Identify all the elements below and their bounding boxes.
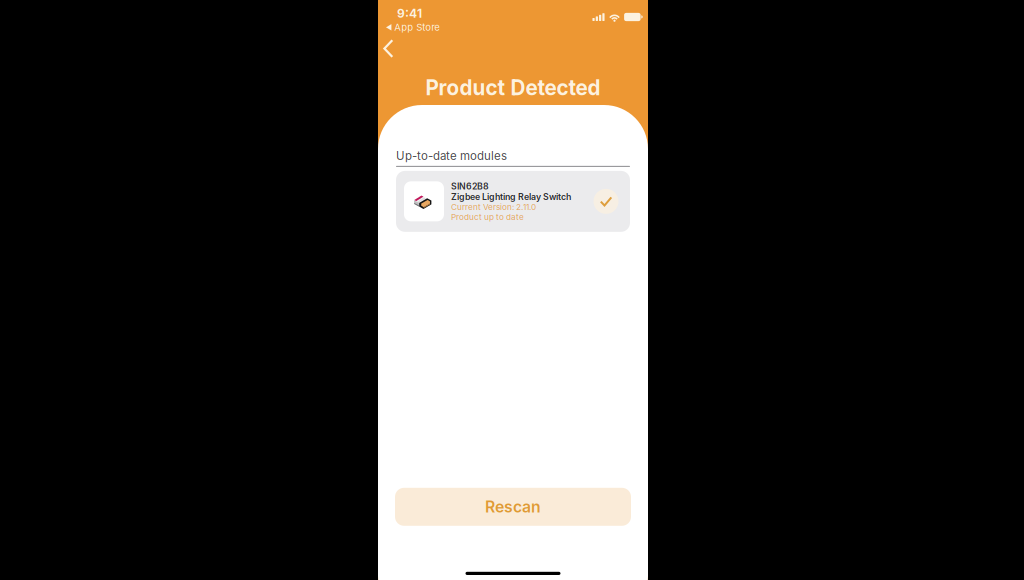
staticText: Product Detected [425, 75, 600, 100]
staticText: Rescan [485, 497, 541, 516]
button[interactable]: Rescan [395, 488, 631, 526]
staticText: SIN62B8 [451, 181, 489, 191]
button[interactable]: SIN62B8 [396, 171, 630, 232]
staticText: Up-to-date modules [396, 149, 507, 163]
staticText: Product up to date [451, 212, 524, 222]
staticText: Zigbee Lighting Relay Switch [451, 191, 571, 202]
staticText: 9:41 [397, 6, 422, 20]
staticText: App Store [394, 21, 440, 33]
button[interactable]: Back [378, 33, 410, 65]
staticText: Current Version: 2.11.0 [451, 202, 536, 212]
